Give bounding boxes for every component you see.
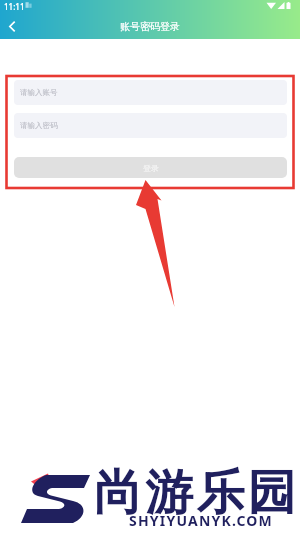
staticText: 请输入密码 [20, 121, 58, 130]
staticText: 尚游乐园 [94, 463, 299, 523]
staticText: 账号密码登录 [120, 20, 180, 33]
button[interactable]: Back [0, 13, 24, 39]
staticText: SHYIYUANYK.COM [129, 511, 273, 530]
staticText: 11:11 [4, 1, 25, 12]
button[interactable]: 请输入账号 [14, 80, 287, 105]
staticText: 登录 [143, 163, 159, 173]
staticText: 请输入账号 [20, 88, 58, 97]
button[interactable]: 请输入密码 [14, 113, 287, 138]
